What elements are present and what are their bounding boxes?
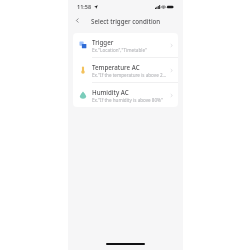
button[interactable]: Humidity AC <box>73 83 178 107</box>
staticText: Ex."If the temperature is above 28°C" <box>92 72 167 78</box>
staticText: Select trigger condition <box>91 17 161 25</box>
staticText: Humidity AC <box>92 88 129 96</box>
staticText: Temperature AC <box>92 63 140 71</box>
staticText: Ex."If the humidity is above 80%" <box>92 97 163 103</box>
staticText: 11:58 <box>77 3 92 10</box>
staticText: Ex."Location","Timetable" <box>92 47 147 53</box>
button[interactable]: Back <box>72 15 83 26</box>
staticText: Trigger <box>92 38 114 46</box>
button[interactable]: Trigger <box>73 33 178 58</box>
button[interactable]: Temperature AC <box>73 58 178 83</box>
